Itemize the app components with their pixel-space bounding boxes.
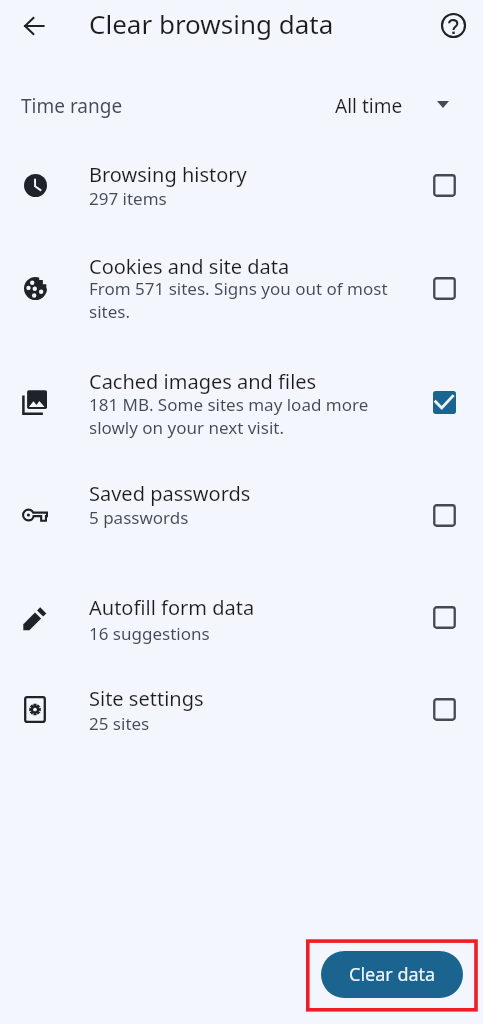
staticText: Time range bbox=[21, 93, 123, 119]
staticText: All time bbox=[335, 93, 403, 119]
button[interactable]: Time range bbox=[0, 78, 483, 128]
staticText: Clear data bbox=[349, 962, 436, 987]
button[interactable]: Back bbox=[10, 2, 58, 50]
staticText: 5 passwords bbox=[89, 506, 394, 529]
button[interactable]: Help bbox=[429, 1, 477, 49]
button[interactable]: Autofill form data bbox=[0, 575, 483, 659]
staticText: 16 suggestions bbox=[89, 622, 394, 645]
staticText: From 571 sites. Signs you out of most si… bbox=[89, 277, 394, 323]
button[interactable]: Clear data bbox=[321, 951, 463, 998]
staticText: Browsing history bbox=[89, 161, 399, 188]
button[interactable]: Saved passwords bbox=[0, 473, 483, 557]
button[interactable]: Site settings bbox=[0, 667, 483, 751]
staticText: Autofill form data bbox=[89, 594, 399, 621]
staticText: Cookies and site data bbox=[89, 253, 399, 280]
button[interactable]: Cached images and files bbox=[0, 360, 483, 444]
button[interactable]: Cookies and site data bbox=[0, 246, 483, 330]
staticText: 25 sites bbox=[89, 712, 394, 735]
staticText: Cached images and files bbox=[89, 368, 399, 395]
button[interactable]: Browsing history bbox=[0, 143, 483, 227]
staticText: Site settings bbox=[89, 685, 399, 712]
staticText: Saved passwords bbox=[89, 480, 399, 507]
staticText: 297 items bbox=[89, 187, 394, 210]
staticText: Clear browsing data bbox=[89, 6, 334, 41]
staticText: 181 MB. Some sites may load more slowly … bbox=[89, 393, 394, 439]
